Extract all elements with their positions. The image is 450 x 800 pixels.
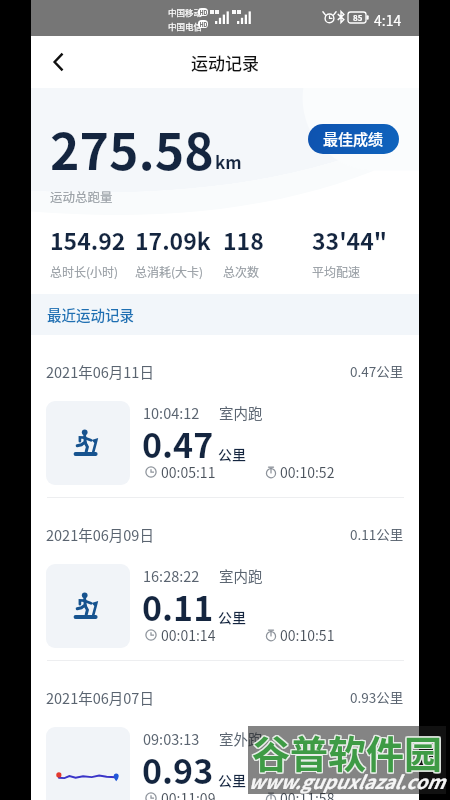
- button[interactable]: 2021年06月11日: [31, 335, 419, 498]
- button[interactable]: 最佳成绩: [308, 124, 399, 154]
- staticText: 中国电信: [168, 20, 203, 32]
- staticText: 中国移动: [168, 6, 203, 18]
- staticText: 最佳成绩: [323, 128, 384, 150]
- staticText: 33'44": [312, 223, 387, 256]
- staticText: 00:10:52: [280, 462, 335, 482]
- staticText: 17.09k: [135, 223, 211, 256]
- staticText: 平均配速: [312, 263, 361, 280]
- staticText: 0.47: [142, 419, 214, 468]
- staticText: km: [215, 149, 242, 174]
- staticText: 室内跑: [219, 565, 263, 586]
- staticText: 运动总跑量: [50, 187, 113, 205]
- staticText: 室内跑: [219, 402, 263, 423]
- staticText: 0.93: [142, 745, 214, 794]
- staticText: 2021年06月09日: [46, 524, 154, 545]
- staticText: 2021年06月11日: [46, 361, 154, 382]
- button[interactable]: 2021年06月09日: [31, 498, 419, 661]
- staticText: 154.92: [50, 223, 126, 256]
- staticText: 118: [223, 223, 264, 256]
- staticText: 00:01:14: [161, 625, 216, 645]
- staticText: 谷普软件园: [252, 724, 443, 779]
- button[interactable]: 2021年06月07日: [31, 661, 419, 800]
- staticText: 85: [353, 12, 363, 23]
- staticText: 谷普软件园: [251, 725, 442, 780]
- staticText: 公里: [218, 770, 246, 790]
- staticText: 2021年06月07日: [46, 687, 154, 708]
- staticText: 总消耗(大卡): [135, 263, 204, 280]
- button[interactable]: Back: [37, 40, 81, 84]
- staticText: 公里: [218, 607, 246, 627]
- staticText: 公里: [218, 444, 246, 464]
- staticText: 谷普软件园: [252, 725, 443, 780]
- staticText: 00:11:58: [280, 788, 335, 800]
- staticText: 谷普软件园: [252, 723, 443, 778]
- staticText: 谷普软件园: [251, 724, 442, 779]
- staticText: 00:11:09: [161, 788, 216, 800]
- staticText: 谷普软件园: [253, 724, 444, 779]
- staticText: 16:28:22: [143, 565, 200, 586]
- staticText: 谷普软件园: [253, 723, 444, 778]
- staticText: 总次数: [223, 263, 260, 280]
- staticText: 0.47公里: [350, 361, 404, 381]
- staticText: 4:14: [374, 10, 402, 30]
- staticText: 0.11公里: [350, 524, 404, 544]
- staticText: 00:10:51: [280, 625, 335, 645]
- staticText: 谷普软件园: [253, 725, 444, 780]
- staticText: 室外跑: [219, 728, 263, 749]
- staticText: 0.11: [142, 582, 214, 631]
- staticText: 10:04:12: [143, 402, 200, 423]
- staticText: 09:03:13: [143, 728, 200, 749]
- staticText: 谷普软件园: [251, 723, 442, 778]
- staticText: 00:05:11: [161, 462, 216, 482]
- staticText: 总时长(小时): [50, 263, 119, 280]
- staticText: 运动记录: [191, 50, 259, 75]
- staticText: 0.93公里: [350, 687, 404, 707]
- staticText: www.gupuxlazal.com: [248, 768, 445, 795]
- staticText: 275.58: [50, 112, 214, 184]
- staticText: 最近运动记录: [47, 304, 134, 325]
